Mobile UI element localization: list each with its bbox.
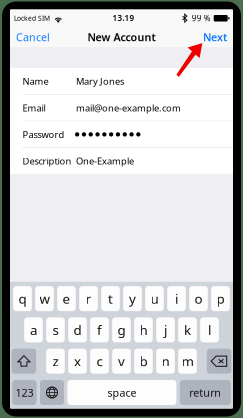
button[interactable]: i <box>167 286 186 311</box>
staticText: New Account <box>87 30 155 44</box>
staticText: y <box>129 290 136 307</box>
staticText: k <box>184 321 191 339</box>
staticText: Password <box>22 128 64 141</box>
button[interactable]: Shift <box>12 349 36 374</box>
button[interactable]: n <box>156 349 175 374</box>
button[interactable]: Next keyboard <box>40 380 64 405</box>
button[interactable]: c <box>90 349 109 374</box>
button[interactable]: w <box>35 286 54 311</box>
staticText: d <box>73 321 81 339</box>
button[interactable]: r <box>79 286 98 311</box>
staticText: t <box>108 290 113 307</box>
staticText: i <box>175 290 178 307</box>
staticText: v <box>118 352 125 370</box>
button[interactable]: Numbers <box>12 380 37 405</box>
button[interactable]: z <box>46 349 65 374</box>
staticText: mail@one-example.com <box>76 102 181 114</box>
staticText: p <box>216 290 224 307</box>
staticText: c <box>96 352 102 370</box>
button[interactable]: g <box>112 317 131 342</box>
staticText: f <box>97 321 102 339</box>
button[interactable]: k <box>178 317 197 342</box>
button[interactable]: t <box>101 286 120 311</box>
staticText: w <box>39 290 49 307</box>
staticText: Mary Jones <box>76 75 124 87</box>
button[interactable]: return <box>180 380 231 405</box>
staticText: Cancel <box>16 30 50 44</box>
staticText: x <box>74 352 81 370</box>
staticText: 13.19 <box>112 13 134 23</box>
staticText: One-Example <box>76 155 134 167</box>
button[interactable]: l <box>200 317 219 342</box>
button[interactable]: v <box>112 349 131 374</box>
staticText: g <box>117 321 125 339</box>
staticText: b <box>139 352 147 370</box>
staticText: j <box>164 321 167 339</box>
staticText: s <box>52 321 58 339</box>
staticText: u <box>150 290 158 307</box>
staticText: a <box>30 321 37 339</box>
button[interactable]: x <box>68 349 87 374</box>
button[interactable]: Cancel <box>13 28 53 46</box>
staticText: Email <box>22 102 45 114</box>
button[interactable]: e <box>57 286 76 311</box>
staticText: Name <box>22 75 48 87</box>
staticText: r <box>85 290 91 307</box>
button[interactable]: y <box>123 286 142 311</box>
button[interactable]: o <box>189 286 208 311</box>
button[interactable]: Next <box>200 28 230 46</box>
staticText: m <box>181 352 193 370</box>
button[interactable]: f <box>90 317 109 342</box>
staticText: o <box>194 290 202 307</box>
staticText: l <box>208 321 211 339</box>
button[interactable]: h <box>134 317 153 342</box>
button[interactable]: j <box>156 317 175 342</box>
button[interactable]: m <box>178 349 197 374</box>
button[interactable]: b <box>134 349 153 374</box>
staticText: space <box>107 385 136 400</box>
staticText: q <box>18 290 26 307</box>
staticText: e <box>62 290 70 307</box>
staticText: Locked SIM <box>14 14 50 23</box>
button[interactable]: Delete <box>207 349 231 374</box>
staticText: return <box>189 385 221 400</box>
staticText: n <box>161 352 169 370</box>
button[interactable]: d <box>68 317 87 342</box>
button[interactable]: q <box>13 286 32 311</box>
staticText: 123 <box>15 385 33 400</box>
button[interactable]: a <box>24 317 43 342</box>
staticText: 99 % <box>192 13 211 23</box>
button[interactable]: p <box>211 286 230 311</box>
button[interactable]: s <box>46 317 65 342</box>
staticText: z <box>52 352 58 370</box>
staticText: Next <box>203 30 227 44</box>
staticText: Description <box>22 155 71 167</box>
staticText: h <box>139 321 147 339</box>
button[interactable]: u <box>145 286 164 311</box>
button[interactable]: space <box>67 380 176 405</box>
